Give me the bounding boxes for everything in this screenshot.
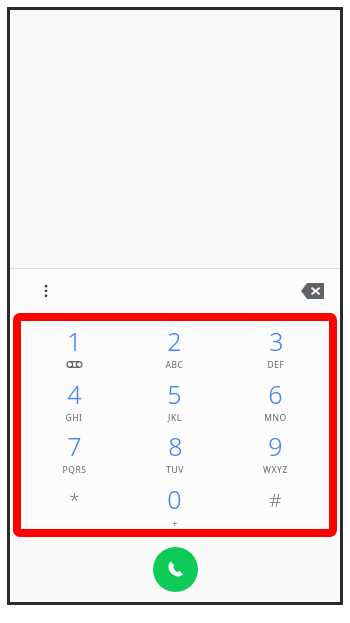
button[interactable]: 7 (24, 427, 124, 477)
staticText: WXYZ (263, 464, 288, 476)
staticText: MNO (264, 412, 287, 424)
staticText: ABC (165, 359, 184, 371)
staticText: * (69, 487, 80, 513)
staticText: GHI (65, 412, 83, 424)
button[interactable]: 9 (225, 427, 326, 477)
button[interactable]: 0 (124, 480, 225, 530)
staticText: TUV (166, 464, 184, 476)
staticText: + (172, 517, 178, 529)
button[interactable]: 2 (124, 322, 225, 372)
staticText: 5 (167, 377, 182, 411)
staticText: 7 (67, 429, 82, 463)
button[interactable]: 6 (225, 375, 326, 425)
button[interactable]: # (225, 480, 326, 530)
button[interactable]: 4 (24, 375, 124, 425)
staticText: 0 (167, 482, 182, 516)
button[interactable]: More options (28, 273, 64, 309)
staticText: 4 (67, 377, 82, 411)
staticText: 6 (268, 377, 283, 411)
button[interactable]: Call (153, 547, 198, 592)
button[interactable]: 3 (225, 322, 326, 372)
staticText: 3 (269, 324, 284, 358)
staticText: PQRS (62, 464, 87, 476)
button[interactable]: 1 (24, 322, 124, 372)
staticText: DEF (267, 359, 285, 371)
staticText: JKL (168, 412, 182, 424)
staticText: 8 (168, 429, 183, 463)
staticText: 2 (167, 324, 182, 358)
button[interactable]: 8 (124, 427, 225, 477)
button[interactable]: * (24, 480, 124, 530)
staticText: # (269, 487, 282, 513)
staticText: 1 (67, 324, 82, 358)
button[interactable]: 5 (124, 375, 225, 425)
button[interactable]: Backspace (292, 271, 332, 311)
staticText: 9 (268, 429, 283, 463)
